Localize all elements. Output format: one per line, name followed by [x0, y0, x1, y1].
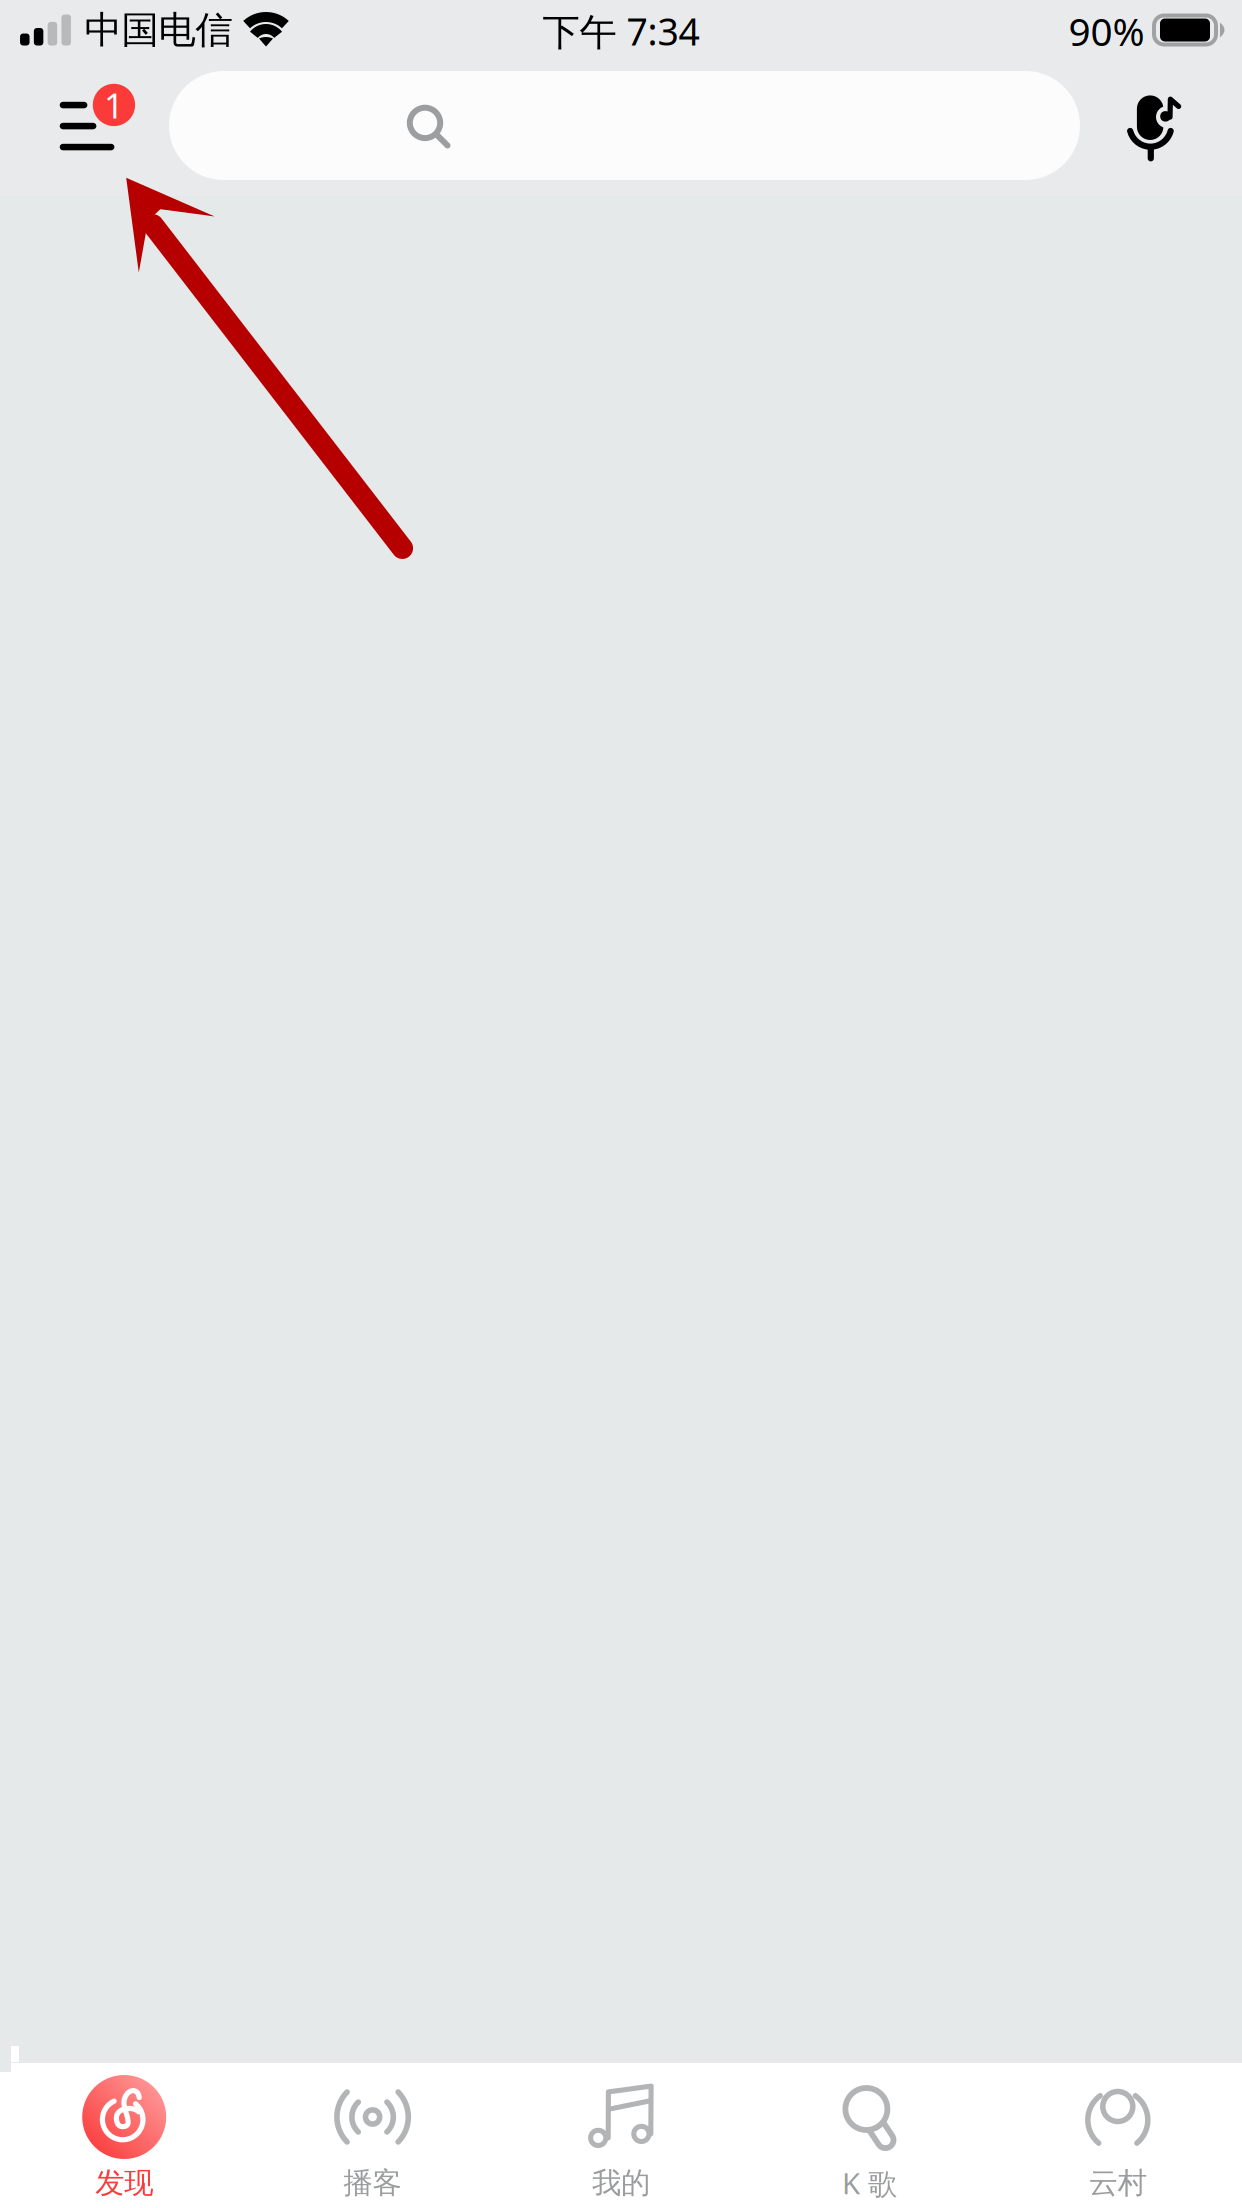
- staticText: K 歌: [842, 2163, 897, 2202]
- button[interactable]: 发现: [0, 2063, 248, 2208]
- staticText: 1: [104, 82, 124, 128]
- staticText: 播客: [344, 2165, 402, 2201]
- staticText: 中国电信: [84, 7, 232, 53]
- button[interactable]: 云村: [994, 2063, 1242, 2208]
- staticText: 我的: [592, 2165, 650, 2201]
- button[interactable]: 语音搜索: [1091, 69, 1221, 189]
- staticText: 下午 7:34: [542, 6, 699, 56]
- button[interactable]: K 歌: [745, 2063, 994, 2208]
- staticText: 90%: [1068, 5, 1144, 57]
- button[interactable]: 搜索: [169, 71, 1080, 180]
- button[interactable]: 播客: [248, 2063, 497, 2208]
- staticText: 云村: [1089, 2165, 1147, 2201]
- button[interactable]: 我的: [497, 2063, 745, 2208]
- staticText: 发现: [95, 2165, 153, 2201]
- button[interactable]: 菜单: [40, 75, 150, 175]
